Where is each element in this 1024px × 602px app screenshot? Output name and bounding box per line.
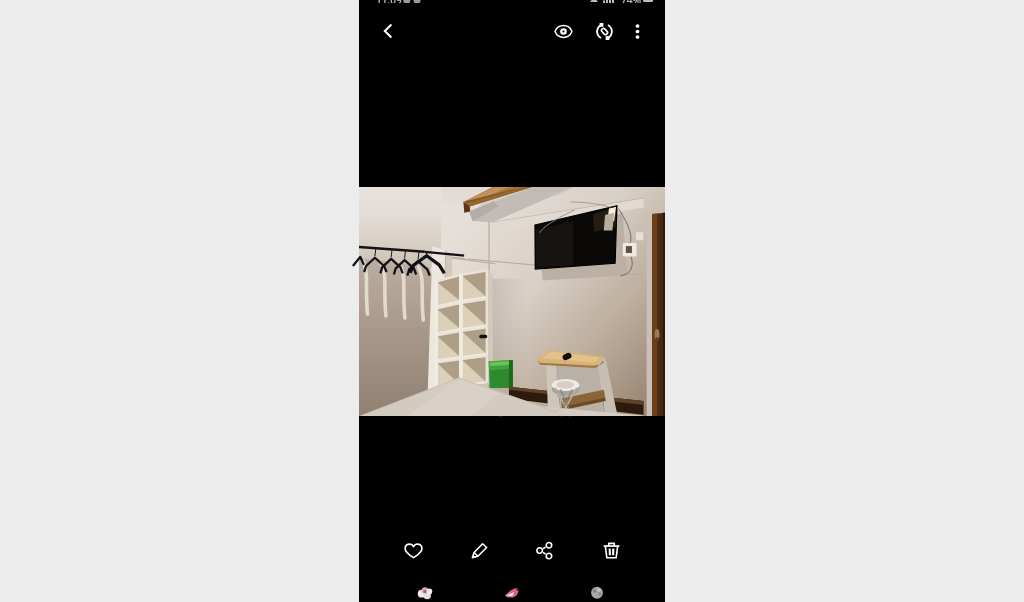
button[interactable]: Share [527, 533, 561, 567]
staticText: 11:09 [376, 0, 402, 3]
button[interactable]: Auto rotate [587, 14, 621, 48]
button[interactable]: Photo [411, 580, 439, 602]
button[interactable]: Photo [583, 580, 611, 602]
button[interactable]: Delete [594, 533, 628, 567]
button[interactable]: Photo [498, 580, 526, 602]
staticText: 74% [621, 0, 641, 3]
button[interactable]: Preview [546, 14, 580, 48]
button[interactable]: More options [620, 14, 654, 48]
staticText: ● ● [403, 0, 422, 3]
button[interactable]: Edit [462, 533, 496, 567]
button[interactable]: Back [370, 13, 406, 49]
button[interactable]: Favourite [396, 533, 430, 567]
